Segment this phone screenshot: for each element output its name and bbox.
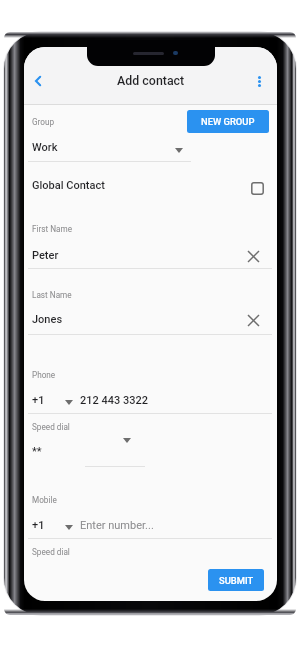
staticText: Global Contact: [32, 179, 105, 192]
staticText: SUBMIT: [219, 575, 254, 586]
staticText: +1: [32, 519, 45, 532]
button[interactable]: Clear: [242, 309, 264, 331]
staticText: Speed dial: [32, 422, 70, 432]
button[interactable]: Clear: [242, 245, 264, 267]
staticText: Speed dial: [32, 547, 70, 557]
button[interactable]: Global Contact: [24, 169, 277, 209]
button[interactable]: Back: [26, 69, 50, 93]
staticText: Last Name: [32, 290, 72, 300]
staticText: NEW GROUP: [201, 116, 255, 127]
button[interactable]: SUBMIT: [208, 569, 264, 591]
staticText: First Name: [32, 224, 73, 234]
staticText: Group: [32, 117, 55, 127]
staticText: 212 443 3322: [80, 394, 148, 407]
button[interactable]: More options: [247, 69, 271, 93]
staticText: Work: [32, 141, 58, 154]
staticText: Phone: [32, 370, 56, 380]
staticText: Enter number...: [80, 519, 154, 532]
staticText: Jones: [32, 313, 63, 326]
staticText: **: [32, 445, 42, 458]
staticText: +1: [32, 394, 45, 407]
staticText: Mobile: [32, 495, 57, 505]
staticText: Peter: [32, 249, 59, 262]
button[interactable]: NEW GROUP: [187, 110, 269, 133]
staticText: Add contact: [117, 73, 185, 88]
